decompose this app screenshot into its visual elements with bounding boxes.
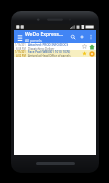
button[interactable]: 1/16/2016: [14, 43, 96, 50]
staticText: WeDo Express...: [25, 31, 63, 38]
button[interactable]: Search: [68, 30, 77, 43]
staticText: Arrived at Head Office of parcels: [28, 54, 71, 57]
button[interactable]: More options: [86, 30, 95, 43]
button[interactable]: 1/15/2016: [14, 50, 96, 57]
staticText: 1/16/2016: [15, 43, 27, 47]
button[interactable]: Add parcel: [77, 30, 86, 43]
staticText: 1/15/2016: [15, 50, 27, 54]
staticText: Dispatching: Deliver: [28, 47, 55, 50]
staticText: All parcels: [25, 38, 42, 43]
button[interactable]: WeDo Express...: [25, 30, 68, 43]
button[interactable]: Favourite: [81, 50, 88, 57]
button[interactable]: Favourite: [81, 43, 88, 50]
staticText: 8:08 PM: [16, 47, 26, 50]
staticText: Attached: PROD INFO/DOCS: [28, 43, 69, 47]
staticText: Face Pad (WB0001 1010 1076): [28, 50, 71, 54]
button[interactable]: Open navigation drawer: [14, 30, 25, 43]
staticText: 4:02 PM: [16, 54, 26, 57]
